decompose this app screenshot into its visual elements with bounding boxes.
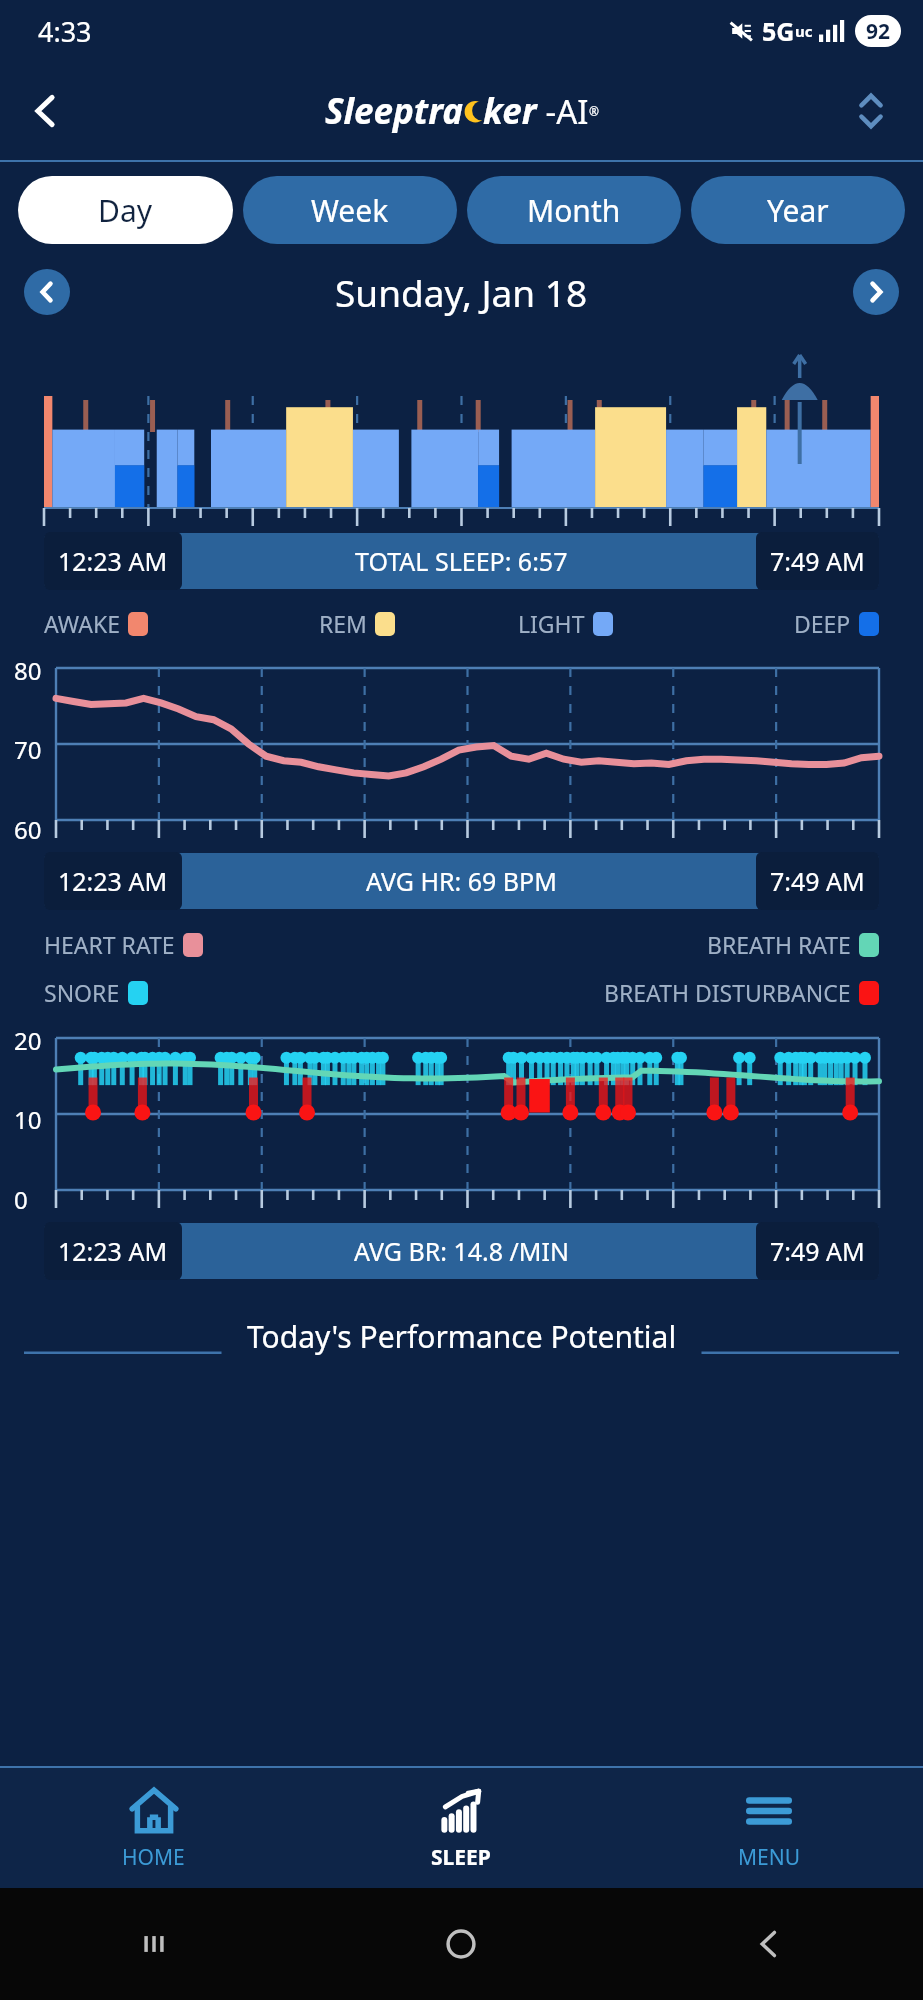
- button[interactable]: Month: [467, 176, 681, 244]
- button[interactable]: Recents: [0, 1888, 307, 2000]
- staticText: 70: [14, 733, 42, 766]
- staticText: Month: [527, 190, 621, 231]
- button[interactable]: Next day: [853, 269, 899, 315]
- staticText: ®: [589, 103, 599, 119]
- staticText: 4:33: [38, 13, 92, 50]
- staticText: BREATH RATE: [707, 929, 851, 960]
- staticText: 7:49 AM: [770, 544, 865, 578]
- staticText: 80: [14, 654, 42, 687]
- button[interactable]: Previous day: [24, 269, 70, 315]
- staticText: REM: [319, 608, 367, 639]
- staticText: 10: [14, 1103, 42, 1136]
- staticText: 92: [866, 17, 891, 46]
- staticText: SNORE: [44, 977, 120, 1008]
- button[interactable]: Year: [691, 176, 905, 244]
- staticText: HOME: [122, 1843, 185, 1872]
- staticText: 60: [14, 813, 42, 846]
- staticText: 7:49 AM: [770, 864, 865, 898]
- staticText: ker: [483, 87, 537, 135]
- button[interactable]: MENU: [615, 1768, 923, 1888]
- staticText: Today's Performance Potential: [247, 1316, 677, 1357]
- staticText: 7:49 AM: [770, 1234, 865, 1268]
- button[interactable]: Week: [243, 176, 457, 244]
- button[interactable]: Expand: [841, 81, 901, 141]
- staticText: -AI: [537, 89, 589, 134]
- button[interactable]: HOME: [0, 1768, 307, 1888]
- staticText: Sleeptra: [325, 87, 463, 135]
- staticText: Year: [767, 190, 829, 231]
- staticText: LIGHT: [518, 608, 585, 639]
- button[interactable]: SLEEP: [307, 1768, 615, 1888]
- staticText: 12:23 AM: [58, 1234, 168, 1268]
- button[interactable]: Back: [18, 83, 74, 139]
- button[interactable]: Day: [18, 176, 233, 244]
- staticText: AWAKE: [44, 608, 120, 639]
- button[interactable]: Back: [615, 1888, 923, 2000]
- staticText: AVG BR: 14.8 /MIN: [354, 1234, 569, 1268]
- staticText: 5G: [762, 14, 795, 48]
- staticText: 12:23 AM: [58, 544, 168, 578]
- staticText: AVG HR: 69 BPM: [366, 864, 557, 898]
- staticText: DEEP: [794, 608, 851, 639]
- staticText: 12:23 AM: [58, 864, 168, 898]
- staticText: Sunday, Jan 18: [335, 267, 588, 317]
- staticText: uc: [795, 21, 813, 41]
- staticText: Day: [98, 190, 153, 231]
- staticText: BREATH DISTURBANCE: [604, 977, 851, 1008]
- button[interactable]: Today's Performance Potential: [247, 1310, 677, 1363]
- staticText: MENU: [738, 1843, 801, 1872]
- staticText: TOTAL SLEEP: 6:57: [355, 544, 568, 578]
- staticText: 0: [14, 1183, 28, 1216]
- button[interactable]: Home: [307, 1888, 615, 2000]
- staticText: HEART RATE: [44, 929, 175, 960]
- staticText: SLEEP: [431, 1843, 491, 1872]
- staticText: Week: [311, 190, 389, 231]
- staticText: 20: [14, 1024, 42, 1057]
